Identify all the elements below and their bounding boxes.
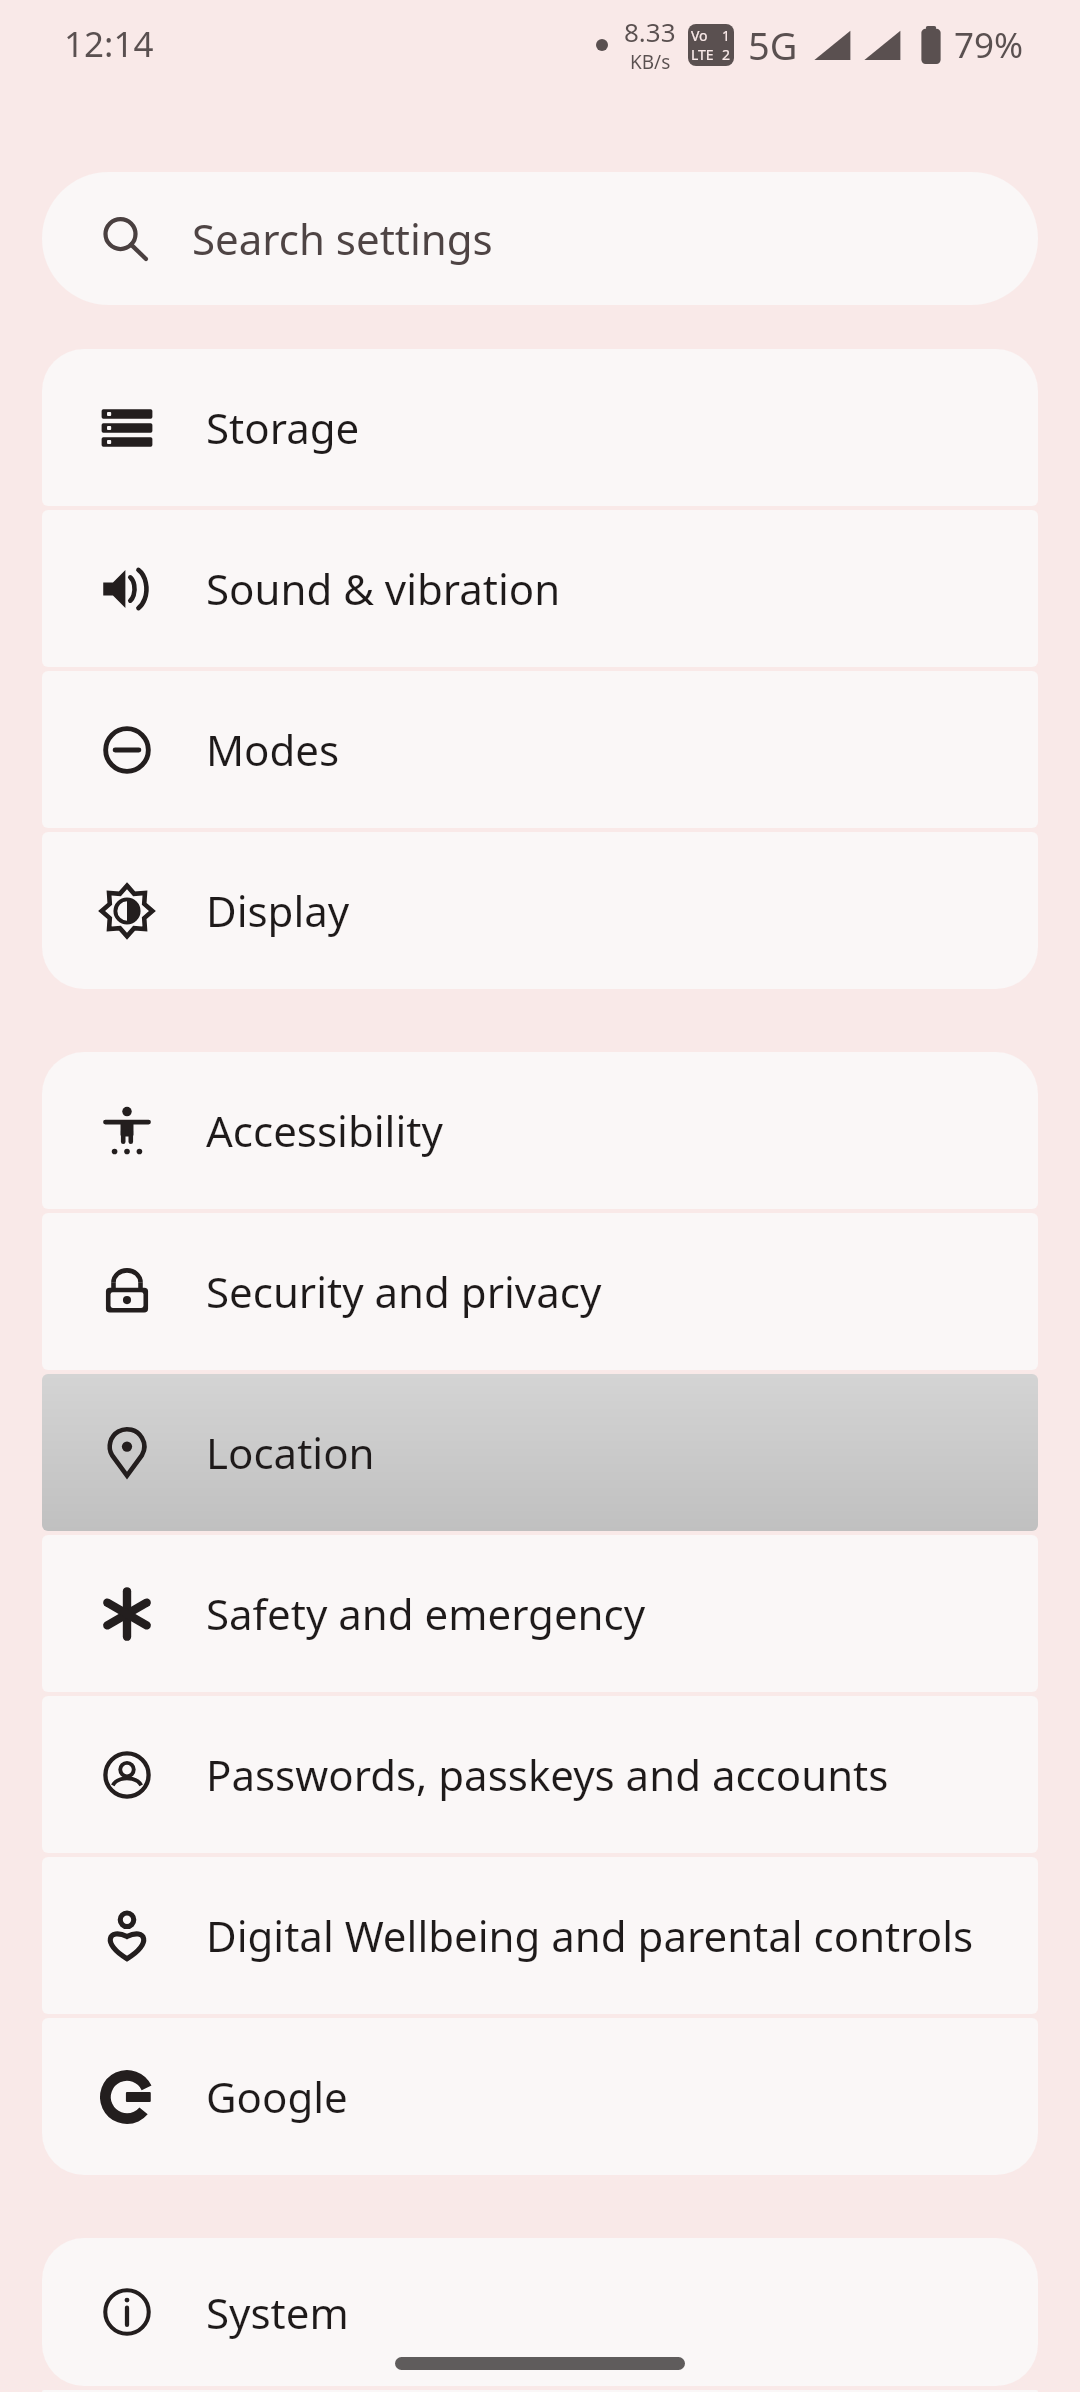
button[interactable]: Sound & vibration bbox=[42, 510, 1038, 667]
staticText: Digital Wellbeing and parental controls bbox=[206, 1907, 974, 1964]
button[interactable]: Display bbox=[42, 832, 1038, 989]
staticText: 1 bbox=[722, 26, 731, 45]
button[interactable]: Search bbox=[42, 172, 1038, 305]
button[interactable]: Passwords, passkeys and accounts bbox=[42, 1696, 1038, 1853]
staticText: System bbox=[206, 2284, 349, 2341]
staticText: LTE bbox=[691, 45, 714, 64]
button[interactable]: System bbox=[42, 2238, 1038, 2386]
button[interactable]: Security and privacy bbox=[42, 1213, 1038, 1370]
staticText: 12:14 bbox=[64, 20, 154, 68]
staticText: 8.33 bbox=[624, 14, 676, 49]
staticText: Search settings bbox=[192, 210, 493, 267]
button[interactable]: Safety and emergency bbox=[42, 1535, 1038, 1692]
staticText: Modes bbox=[206, 721, 340, 778]
staticText: 5G bbox=[748, 19, 798, 71]
other: Search bbox=[100, 214, 150, 264]
button[interactable]: Digital Wellbeing and parental controls bbox=[42, 1857, 1038, 2014]
staticText: Safety and emergency bbox=[206, 1585, 646, 1642]
button[interactable]: Google bbox=[42, 2018, 1038, 2175]
staticText: Display bbox=[206, 882, 350, 939]
staticText: Location bbox=[206, 1424, 375, 1481]
staticText: Vo bbox=[691, 26, 708, 45]
staticText: Sound & vibration bbox=[206, 560, 561, 617]
button[interactable]: Modes bbox=[42, 671, 1038, 828]
staticText: KB/s bbox=[630, 49, 671, 75]
staticText: Storage bbox=[206, 399, 360, 456]
staticText: Passwords, passkeys and accounts bbox=[206, 1746, 889, 1803]
staticText: Security and privacy bbox=[206, 1263, 602, 1320]
staticText: 2 bbox=[722, 45, 731, 64]
staticText: Accessibility bbox=[206, 1102, 443, 1159]
button[interactable]: Location bbox=[42, 1374, 1038, 1531]
staticText: Google bbox=[206, 2068, 348, 2125]
button[interactable]: Storage bbox=[42, 349, 1038, 506]
staticText: 79% bbox=[954, 21, 1024, 69]
button[interactable]: Accessibility bbox=[42, 1052, 1038, 1209]
